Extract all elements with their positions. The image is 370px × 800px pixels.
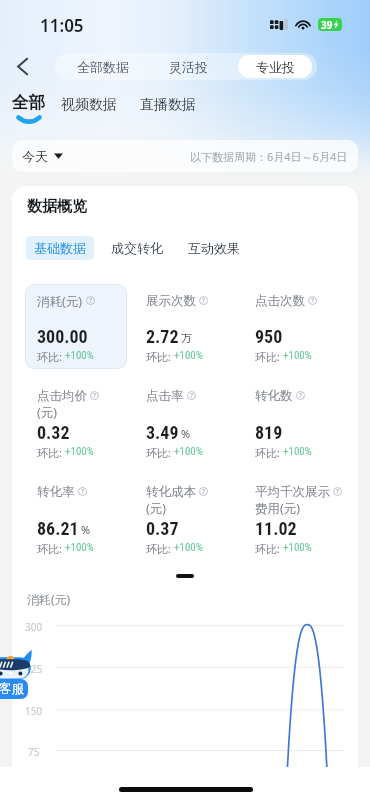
staticText: 消耗(元) <box>37 293 83 310</box>
staticText: 环比: <box>146 445 174 460</box>
staticText: +100% <box>283 349 312 362</box>
staticText: 基础数据 <box>34 240 86 256</box>
staticText: 11.02 <box>255 518 297 539</box>
staticText: +100% <box>65 445 94 458</box>
staticText: 全部数据 <box>77 59 129 75</box>
staticText: 平均千次展示 费用(元) <box>255 484 330 516</box>
staticText: 225 <box>25 662 43 676</box>
staticText: 150 <box>25 704 43 718</box>
button[interactable]: 返回 <box>6 50 38 82</box>
staticText: 展示次数 <box>146 293 196 309</box>
button[interactable]: 互动效果 <box>180 236 248 260</box>
staticText: 消耗(元) <box>27 591 71 607</box>
staticText: 点击率 <box>146 388 184 404</box>
staticText: +100% <box>174 541 203 554</box>
staticText: 环比: <box>146 541 174 556</box>
staticText: 86.21 <box>37 518 79 539</box>
staticText: 环比: <box>146 349 174 364</box>
staticText: +100% <box>283 541 312 554</box>
staticText: 环比: <box>255 349 283 364</box>
staticText: 点击均价 (元) <box>37 388 87 420</box>
staticText: 客服 <box>0 681 24 697</box>
staticText: 300.00 <box>37 326 88 347</box>
staticText: +100% <box>174 445 203 458</box>
staticText: +100% <box>283 445 312 458</box>
staticText: ? <box>311 296 315 305</box>
button[interactable]: 视频数据 <box>61 96 117 114</box>
staticText: 专业投 <box>256 59 295 75</box>
staticText: 0.37 <box>146 518 179 539</box>
staticText: % <box>81 522 91 537</box>
button[interactable]: 成交转化 <box>103 236 171 260</box>
staticText: % <box>181 426 191 441</box>
staticText: ? <box>81 487 85 496</box>
button[interactable]: 专业投 <box>238 55 312 78</box>
staticText: ? <box>93 391 97 400</box>
staticText: 万 <box>181 331 192 345</box>
button[interactable]: 直播数据 <box>140 96 196 114</box>
staticText: 950 <box>255 326 283 347</box>
staticText: 数据概览 <box>27 197 87 216</box>
staticText: 转化成本 (元) <box>146 484 196 516</box>
staticText: 全部 <box>12 92 45 113</box>
button[interactable] <box>25 284 127 369</box>
button[interactable]: 全部 <box>12 92 45 124</box>
staticText: ? <box>190 391 194 400</box>
button[interactable]: 今天 <box>22 148 63 164</box>
staticText: 以下数据周期：6月4日～6月4日 <box>190 149 348 164</box>
button[interactable]: 基础数据 <box>26 236 94 260</box>
staticText: 环比: <box>37 541 65 556</box>
staticText: 环比: <box>37 349 65 364</box>
staticText: ? <box>202 296 206 305</box>
staticText: 39 <box>321 18 333 31</box>
staticText: 转化数 <box>255 388 293 404</box>
staticText: 环比: <box>37 445 65 460</box>
staticText: 灵活投 <box>169 59 208 75</box>
staticText: 转化率 <box>37 484 75 500</box>
staticText: 3.49 <box>146 422 179 443</box>
staticText: ? <box>336 487 340 496</box>
staticText: ? <box>89 296 93 305</box>
staticText: 0.32 <box>37 422 70 443</box>
staticText: 成交转化 <box>111 240 163 256</box>
staticText: ? <box>299 391 303 400</box>
staticText: 点击次数 <box>255 293 305 309</box>
staticText: +100% <box>174 349 203 362</box>
staticText: 300 <box>25 620 43 634</box>
staticText: +100% <box>65 349 94 362</box>
staticText: 75 <box>28 745 40 759</box>
button[interactable]: 灵活投 <box>151 55 226 78</box>
staticText: 今天 <box>22 148 48 164</box>
staticText: 环比: <box>255 541 283 556</box>
button[interactable]: 客服 <box>0 648 33 700</box>
button[interactable]: 全部数据 <box>55 55 151 78</box>
staticText: 11:05 <box>40 14 84 37</box>
staticText: 819 <box>255 422 283 443</box>
staticText: +100% <box>65 541 94 554</box>
staticText: 环比: <box>255 445 283 460</box>
staticText: 互动效果 <box>188 240 240 256</box>
staticText: 2.72 <box>146 326 179 347</box>
staticText: ? <box>202 487 206 496</box>
